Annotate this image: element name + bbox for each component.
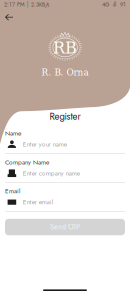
staticText: Send OTP bbox=[50, 222, 80, 232]
staticText: R. B. Orna bbox=[41, 67, 88, 78]
staticText: RB bbox=[53, 39, 77, 57]
staticText: Enter email bbox=[23, 197, 54, 207]
staticText: Company Name bbox=[5, 157, 49, 167]
button[interactable]: Back bbox=[1, 9, 18, 25]
staticText: Email bbox=[5, 186, 21, 196]
staticText: Name bbox=[5, 128, 21, 138]
staticText: Enter your name bbox=[23, 139, 67, 149]
button[interactable]: Send OTP bbox=[5, 219, 125, 235]
staticText: 2:17 PM | 2.3KB/s bbox=[4, 0, 49, 9]
staticText: Register bbox=[49, 110, 80, 123]
staticText: 4G ıll 91 bbox=[102, 0, 126, 9]
staticText: Enter company name bbox=[23, 168, 80, 178]
